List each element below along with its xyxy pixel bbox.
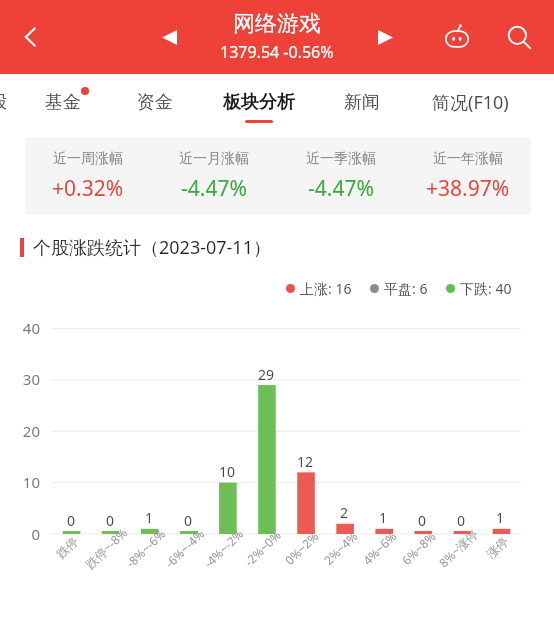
staticText: 1 [145, 508, 154, 527]
staticText: -2%~0% [241, 527, 284, 569]
staticText: 近一季涨幅 [306, 150, 376, 168]
staticText: 新闻 [344, 91, 380, 114]
staticText: 2 [340, 503, 349, 522]
staticText: -4.47% [181, 174, 247, 203]
button[interactable]: 基金 [17, 74, 109, 131]
staticText: 网络游戏 [233, 10, 321, 38]
staticText: -8%~-6% [122, 525, 169, 571]
staticText: 涨停 [483, 534, 511, 561]
button[interactable]: Back [8, 14, 54, 60]
staticText: 跌停~-8% [82, 524, 130, 572]
staticText: 29 [258, 365, 275, 384]
staticText: 近一年涨幅 [433, 150, 503, 168]
staticText: 0 [457, 511, 466, 530]
staticText: 个股涨跌统计（2023-07-11） [33, 235, 271, 260]
button[interactable]: Next sector [362, 14, 408, 60]
staticText: 基金 [45, 91, 81, 114]
button[interactable]: 平盘: 6 [370, 279, 428, 298]
staticText: 板块分析 [223, 91, 295, 114]
staticText: -6%~-4% [161, 525, 208, 571]
staticText: 下跌: 40 [460, 279, 512, 298]
staticText: 1 [496, 508, 505, 527]
button[interactable]: Search [496, 14, 542, 60]
staticText: 1379.54 -0.56% [220, 41, 334, 63]
button[interactable]: 简况(F10) [408, 74, 532, 131]
staticText: 0 [418, 511, 427, 530]
staticText: 0 [106, 511, 115, 530]
button[interactable]: 新闻 [316, 74, 408, 131]
button[interactable]: 板块分析 [201, 74, 316, 131]
staticText: 8%~涨停 [435, 526, 481, 570]
staticText: -4.47% [308, 174, 374, 203]
button[interactable]: 股 [0, 74, 17, 131]
staticText: 4%~6% [359, 528, 400, 568]
staticText: +38.97% [426, 174, 510, 203]
staticText: 0%~2% [281, 528, 322, 568]
staticText: -4%~-2% [200, 525, 247, 571]
staticText: 股 [0, 91, 7, 114]
button[interactable]: AI assistant [434, 14, 480, 60]
staticText: 上涨: 16 [300, 279, 352, 298]
staticText: 30 [22, 369, 40, 389]
staticText: 1 [379, 508, 388, 527]
staticText: 40 [22, 318, 40, 338]
button[interactable]: 下跌: 40 [446, 279, 512, 298]
staticText: 10 [219, 462, 236, 481]
staticText: 10 [22, 472, 40, 492]
staticText: 平盘: 6 [384, 279, 428, 298]
staticText: 跌停 [53, 534, 81, 561]
staticText: 0 [67, 511, 76, 530]
staticText: 20 [22, 421, 40, 441]
staticText: +0.32% [52, 174, 124, 203]
staticText: 近一月涨幅 [179, 150, 249, 168]
staticText: 12 [297, 452, 314, 471]
staticText: 资金 [137, 91, 173, 114]
button[interactable]: 上涨: 16 [286, 279, 352, 298]
staticText: 简况(F10) [432, 90, 509, 115]
staticText: 6%~8% [398, 528, 439, 568]
staticText: 2%~4% [320, 528, 361, 568]
staticText: 0 [184, 511, 193, 530]
staticText: 近一周涨幅 [53, 150, 123, 168]
button[interactable]: Previous sector [146, 14, 192, 60]
staticText: 0 [31, 524, 40, 544]
button[interactable]: 资金 [109, 74, 201, 131]
